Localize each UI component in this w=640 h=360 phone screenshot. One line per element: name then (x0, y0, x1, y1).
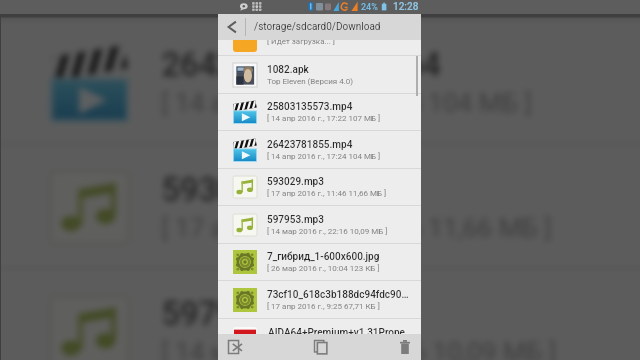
button[interactable]: 26423781855.mp4 (218, 131, 421, 168)
button[interactable]: 593029.mp3 (1, 145, 640, 266)
button[interactable]: 597953.mp3 (1, 270, 640, 360)
button[interactable]: Delete (354, 334, 421, 360)
staticText: [ 14 мар 2016 г., 22:16 10,09 МБ ] (267, 227, 388, 236)
staticText: Top Eleven (Версия 4.0) (267, 77, 354, 86)
staticText: [ 26 мар 2016 г., 10:04 123 КБ ] (267, 264, 380, 273)
staticText: [ 14 апр 2016 г., 17:24 104 МБ ] (267, 152, 381, 161)
staticText: 1082.apk (267, 64, 309, 76)
button[interactable]: 7_гибрид_1-600x600.jpg (218, 244, 421, 280)
staticText: 593029.mp3 (267, 176, 324, 188)
button[interactable]: Copy (286, 334, 354, 360)
button[interactable]: 1082.apk (218, 56, 421, 93)
staticText: AIDA64+Premium+v1.31Prope (268, 327, 405, 334)
staticText: [ 14 апр 2016 г., 17:24 104 МБ ] (161, 90, 535, 119)
staticText: 26423781855.mp4 (267, 139, 353, 151)
button[interactable]: 26423781855.mp4 (1, 21, 640, 142)
staticText: [ 17 апр 2016 г., 11:46 11,66 МБ ] (267, 189, 387, 198)
staticText: 24% (361, 2, 378, 13)
button[interactable]: Back (218, 14, 245, 40)
button[interactable]: Deselect all (218, 334, 286, 360)
staticText: /storage/sdcard0/Download (254, 21, 381, 33)
staticText: [ 17 апр 2016 г., 11:46 11,66 МБ ] (161, 214, 554, 243)
staticText: [ Идет загрузка... ] (267, 40, 335, 46)
staticText: 597953.mp3 (267, 214, 324, 226)
staticText: 7_гибрид_1-600x600.jpg (267, 251, 380, 263)
staticText: [ 14 мар 2016 г., 22:16 10,09 МБ ] (161, 338, 558, 360)
staticText: 597953.mp3 (161, 296, 348, 335)
staticText: [ 14 апр 2016 г., 17:22 107 МБ ] (267, 114, 381, 123)
staticText: [ 17 апр 2016 г., 9:25 67,71 КБ ] (267, 302, 380, 311)
staticText: 593029.mp3 (161, 171, 348, 211)
staticText: 26423781855.mp4 (161, 47, 443, 86)
button[interactable]: 25803135573.mp4 (218, 94, 421, 130)
staticText: 25803135573.mp4 (267, 101, 353, 113)
staticText: 73cf10_618c3b188dc94fdc90… (267, 289, 409, 301)
button[interactable]: 597953.mp3 (218, 206, 421, 243)
button[interactable]: 593029.mp3 (218, 169, 421, 205)
button[interactable]: 73cf10_618c3b188dc94fdc90… (218, 281, 421, 318)
button[interactable]: AIDA64+Premium+v1.31Prope (218, 319, 421, 334)
staticText: 12:28 (393, 1, 419, 13)
